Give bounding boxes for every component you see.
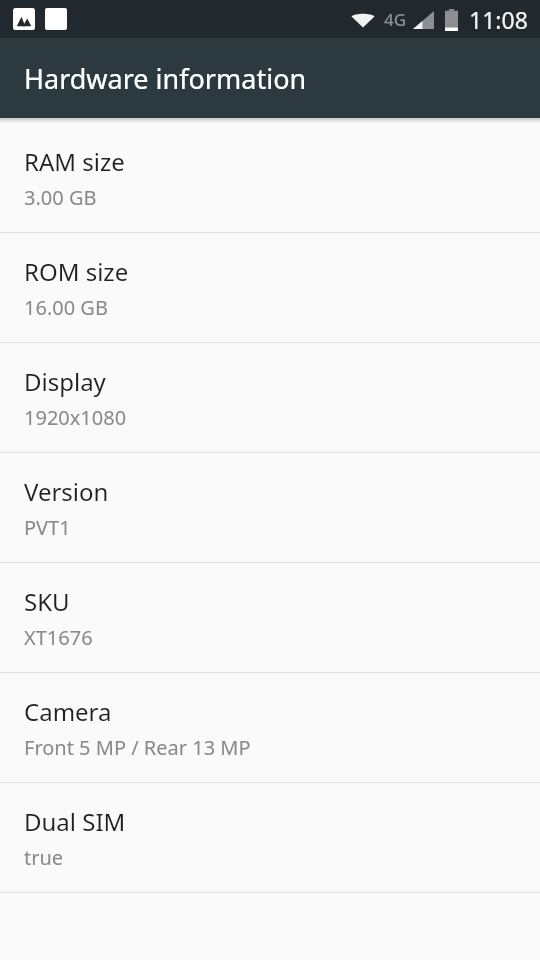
staticText: 4G (384, 8, 407, 31)
staticText: XT1676 (24, 624, 93, 651)
staticText: Display (24, 365, 106, 398)
button[interactable]: Version (0, 453, 540, 562)
button[interactable]: Display (0, 343, 540, 452)
staticText: SKU (24, 585, 70, 618)
button[interactable]: Camera (0, 673, 540, 782)
staticText: 1920x1080 (24, 404, 127, 431)
button[interactable]: ROM size (0, 233, 540, 342)
button[interactable]: Dual SIM (0, 783, 540, 892)
staticText: PVT1 (24, 514, 71, 541)
staticText: Hardware information (24, 60, 307, 97)
button[interactable]: RAM size (0, 123, 540, 232)
staticText: 11:08 (469, 4, 528, 35)
staticText: ROM size (24, 255, 129, 288)
staticText: true (24, 844, 64, 871)
staticText: Dual SIM (24, 805, 126, 838)
staticText: Camera (24, 695, 112, 728)
button[interactable]: SKU (0, 563, 540, 672)
staticText: Front 5 MP / Rear 13 MP (24, 734, 251, 761)
staticText: 16.00 GB (24, 294, 108, 321)
staticText: RAM size (24, 145, 125, 178)
staticText: Version (24, 475, 109, 508)
staticText: 3.00 GB (24, 184, 97, 211)
